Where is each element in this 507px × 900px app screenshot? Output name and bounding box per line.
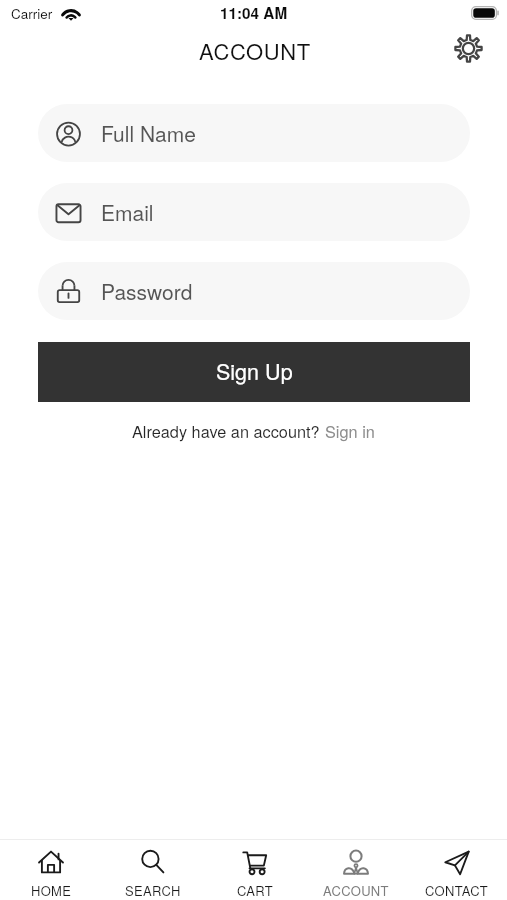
- staticText: Carrier: [11, 4, 53, 23]
- button[interactable]: Sign in: [325, 419, 375, 442]
- button[interactable]: CART: [204, 840, 305, 900]
- staticText: CART: [237, 881, 273, 900]
- staticText: Password: [101, 276, 193, 306]
- staticText: Email: [101, 197, 154, 227]
- staticText: ACCOUNT: [323, 881, 389, 900]
- staticText: ACCOUNT: [199, 35, 311, 67]
- button[interactable]: Settings: [447, 27, 489, 69]
- button[interactable]: HOME: [0, 840, 102, 900]
- button[interactable]: CONTACT: [406, 840, 507, 900]
- staticText: SEARCH: [125, 881, 181, 900]
- button[interactable]: Sign Up: [38, 342, 470, 402]
- button[interactable]: Email: [38, 183, 470, 241]
- button[interactable]: Full Name: [38, 104, 470, 162]
- staticText: Sign Up: [216, 355, 293, 386]
- staticText: CONTACT: [425, 881, 489, 900]
- button[interactable]: Password: [38, 262, 470, 320]
- staticText: Sign in: [325, 419, 375, 442]
- staticText: 11:04 AM: [220, 2, 288, 24]
- button[interactable]: ACCOUNT: [305, 840, 406, 900]
- button[interactable]: SEARCH: [102, 840, 204, 900]
- staticText: Already have an account?: [132, 419, 325, 442]
- staticText: Full Name: [101, 118, 196, 148]
- staticText: HOME: [31, 881, 72, 900]
